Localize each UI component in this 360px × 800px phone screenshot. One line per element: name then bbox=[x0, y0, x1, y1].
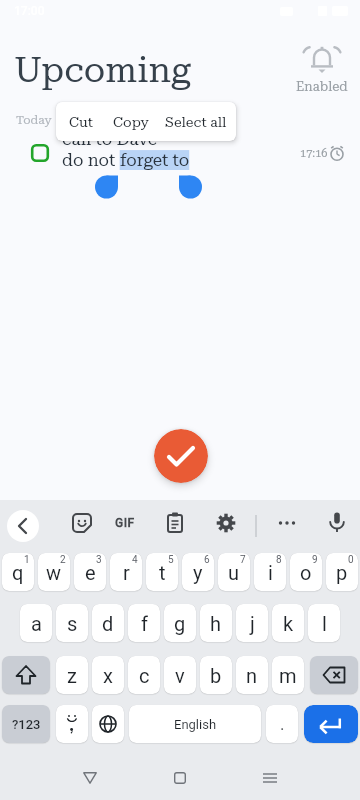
button[interactable]: c bbox=[128, 656, 160, 694]
button[interactable]: z bbox=[56, 656, 88, 694]
staticText: Cut bbox=[69, 114, 94, 130]
staticText: y bbox=[193, 561, 203, 584]
staticText: l bbox=[322, 612, 327, 635]
staticText: 7 bbox=[240, 554, 246, 566]
button[interactable]: e bbox=[74, 553, 106, 591]
staticText: u bbox=[228, 561, 240, 584]
button[interactable] bbox=[317, 503, 357, 543]
button[interactable] bbox=[250, 760, 290, 796]
button[interactable]: j bbox=[236, 604, 268, 642]
button[interactable]: g bbox=[164, 604, 196, 642]
staticText: v bbox=[175, 664, 185, 687]
button[interactable] bbox=[154, 429, 208, 483]
staticText: b bbox=[210, 664, 222, 687]
staticText: w bbox=[46, 561, 62, 584]
button[interactable]: t bbox=[146, 553, 178, 591]
button[interactable]: o bbox=[290, 553, 322, 591]
staticText: i bbox=[268, 561, 273, 584]
staticText: m bbox=[279, 664, 297, 687]
button[interactable] bbox=[62, 503, 102, 543]
button[interactable] bbox=[92, 705, 124, 743]
staticText: r bbox=[123, 561, 130, 584]
staticText: 5 bbox=[168, 554, 174, 566]
staticText: c bbox=[139, 664, 150, 687]
button[interactable] bbox=[0, 128, 360, 178]
staticText: 3 bbox=[96, 554, 102, 566]
staticText: 6 bbox=[204, 554, 210, 566]
staticText: s bbox=[67, 612, 78, 635]
staticText: t bbox=[159, 561, 166, 584]
button[interactable]: a bbox=[20, 604, 52, 642]
button[interactable] bbox=[7, 510, 39, 542]
button[interactable] bbox=[2, 656, 50, 694]
staticText: n bbox=[246, 664, 258, 687]
button[interactable]: w bbox=[38, 553, 70, 591]
button[interactable]: GIF bbox=[105, 503, 145, 543]
button[interactable]: h bbox=[200, 604, 232, 642]
staticText: z bbox=[67, 664, 77, 687]
staticText: j bbox=[250, 612, 255, 635]
staticText: 2 bbox=[60, 554, 66, 566]
button[interactable]: l bbox=[308, 604, 340, 642]
staticText: x bbox=[103, 664, 113, 687]
staticText: 1 bbox=[24, 554, 30, 566]
staticText: 4 bbox=[132, 554, 138, 566]
button[interactable] bbox=[267, 503, 307, 543]
button[interactable]: Select all bbox=[160, 102, 231, 141]
staticText: Copy bbox=[113, 114, 149, 130]
staticText: q bbox=[12, 561, 24, 584]
button[interactable]: Enabled bbox=[294, 44, 350, 96]
staticText: Upcoming bbox=[14, 50, 191, 91]
button[interactable]: . bbox=[266, 705, 298, 743]
button[interactable]: s bbox=[56, 604, 88, 642]
staticText: d bbox=[102, 612, 114, 635]
staticText: Today bbox=[16, 113, 52, 127]
staticText: o bbox=[300, 561, 312, 584]
button[interactable]: Cut bbox=[59, 102, 103, 141]
button[interactable] bbox=[206, 503, 246, 543]
staticText: a bbox=[31, 612, 42, 635]
button[interactable]: r bbox=[110, 553, 142, 591]
button[interactable]: d bbox=[92, 604, 124, 642]
staticText: GIF bbox=[115, 516, 135, 530]
button[interactable]: u bbox=[218, 553, 250, 591]
button[interactable] bbox=[310, 656, 358, 694]
button[interactable] bbox=[155, 503, 195, 543]
button[interactable]: n bbox=[236, 656, 268, 694]
button[interactable]: y bbox=[182, 553, 214, 591]
staticText: h bbox=[210, 612, 222, 635]
button[interactable] bbox=[160, 760, 200, 796]
staticText: g bbox=[174, 612, 186, 635]
staticText: 8 bbox=[276, 554, 282, 566]
button[interactable] bbox=[304, 705, 358, 743]
button[interactable]: x bbox=[92, 656, 124, 694]
staticText: k bbox=[283, 612, 294, 635]
button[interactable]: f bbox=[128, 604, 160, 642]
button[interactable]: k bbox=[272, 604, 304, 642]
button[interactable]: English bbox=[129, 705, 261, 743]
staticText: 9 bbox=[312, 554, 318, 566]
staticText: Enabled bbox=[296, 79, 348, 94]
button[interactable] bbox=[70, 760, 110, 796]
staticText: English bbox=[174, 717, 217, 732]
button[interactable]: i bbox=[254, 553, 286, 591]
button[interactable]: b bbox=[200, 656, 232, 694]
button[interactable]: q bbox=[2, 553, 34, 591]
button[interactable]: m bbox=[272, 656, 304, 694]
staticText: 0 bbox=[348, 554, 354, 566]
button[interactable]: ?123 bbox=[2, 705, 50, 743]
button[interactable]: v bbox=[164, 656, 196, 694]
staticText: p bbox=[336, 561, 348, 584]
button[interactable] bbox=[56, 705, 88, 743]
staticText: e bbox=[85, 561, 96, 584]
staticText: call to Dave bbox=[62, 129, 158, 149]
staticText: . bbox=[280, 714, 285, 734]
staticText: ?123 bbox=[12, 717, 41, 732]
staticText: f bbox=[141, 612, 148, 635]
button[interactable]: Copy bbox=[108, 102, 153, 141]
button[interactable]: p bbox=[326, 553, 358, 591]
staticText: Select all bbox=[165, 114, 227, 130]
staticText: 17:16 bbox=[300, 147, 328, 160]
staticText: do not forget to bbox=[62, 150, 190, 170]
